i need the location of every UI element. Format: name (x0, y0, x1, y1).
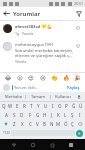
staticText: Yorum ekle... (14, 85, 65, 90)
staticText: 🔥 (63, 75, 70, 81)
button[interactable]: Paylaş (65, 84, 82, 91)
staticText: 😢 (40, 75, 46, 81)
staticText: Ç (71, 121, 74, 127)
button[interactable]: Ö (62, 120, 69, 128)
staticText: E (16, 103, 19, 109)
staticText: X (21, 121, 24, 127)
staticText: L (64, 112, 67, 118)
button[interactable]: Send (76, 130, 83, 137)
staticText: D (20, 112, 24, 118)
button[interactable]: C (26, 120, 34, 128)
staticText: Z (13, 121, 16, 127)
button[interactable]: N (48, 120, 55, 128)
button[interactable]: H (41, 111, 48, 119)
button[interactable]: S (10, 111, 18, 119)
button[interactable]: 😢 (39, 74, 47, 82)
staticText: J (51, 112, 53, 118)
button[interactable]: ?123 (2, 129, 10, 137)
staticText: M (56, 121, 61, 127)
staticText: Yorumlar (13, 10, 41, 18)
button[interactable]: 🎉 (73, 74, 81, 82)
staticText: Ö (64, 121, 68, 127)
button[interactable]: mehmetuygun1991 Sonunda! merhaba kardeşi… (0, 39, 85, 67)
button[interactable]: Filter (72, 7, 85, 20)
staticText: 👏 (51, 75, 58, 81)
button[interactable]: U (42, 102, 49, 110)
button[interactable]: ahmet382sd 💛💪 (0, 21, 85, 39)
staticText: N (50, 121, 54, 127)
button[interactable]: Back (9, 140, 19, 150)
button[interactable]: Tamam (26, 92, 50, 101)
button[interactable]: Ç (69, 120, 76, 128)
button[interactable]: Merhaba (2, 92, 25, 101)
button[interactable]: M (55, 120, 62, 128)
button[interactable]: J (48, 111, 55, 119)
staticText: I (52, 103, 54, 109)
staticText: 1g Yanıtla (15, 31, 34, 36)
button[interactable]: Like (74, 24, 82, 32)
button[interactable]: K (55, 111, 62, 119)
button[interactable]: Ğ (70, 102, 77, 110)
button[interactable]: B (41, 120, 48, 128)
button[interactable]: 😮 (16, 74, 24, 82)
staticText: W (8, 103, 13, 109)
staticText: G (36, 112, 40, 118)
staticText: C (29, 121, 32, 127)
staticText: Tamam (31, 94, 45, 99)
staticText: T (30, 103, 33, 109)
button[interactable]: 😍 (27, 74, 35, 82)
button[interactable]: P (63, 102, 70, 110)
staticText: V (36, 121, 39, 127)
button[interactable]: X (18, 120, 26, 128)
staticText: ahmet382sd 💛💪 (15, 24, 52, 30)
button[interactable]: L (62, 111, 69, 119)
button[interactable]: V (34, 120, 41, 128)
staticText: K (57, 112, 60, 118)
button[interactable]: I (49, 102, 56, 110)
button[interactable]: Recents (47, 140, 57, 150)
button[interactable]: 🔥 (62, 74, 70, 82)
staticText: P (65, 103, 68, 109)
staticText: H (43, 112, 47, 118)
button[interactable]: T (28, 102, 35, 110)
staticText: 🎉 (74, 75, 81, 81)
staticText: Yanıtla (15, 59, 27, 64)
button[interactable]: Shift (1, 120, 10, 128)
button[interactable]: Y (35, 102, 42, 110)
button[interactable]: 😂 (4, 74, 12, 82)
button[interactable]: Home (28, 140, 38, 150)
staticText: mehmetuygun1991 Sonunda! merhaba kardeşi… (15, 42, 74, 58)
button[interactable]: Backspace (76, 120, 84, 128)
button[interactable]: D (18, 111, 26, 119)
button[interactable]: E (14, 102, 21, 110)
staticText: 😮 (17, 75, 23, 81)
staticText: U (44, 103, 48, 109)
button[interactable]: Ş (69, 111, 76, 119)
button[interactable]: Back (0, 7, 13, 20)
staticText: 😍 (28, 75, 34, 81)
staticText: Y (37, 103, 40, 109)
button[interactable]: I (76, 111, 83, 119)
button[interactable]: O (56, 102, 63, 110)
staticText: Ş (71, 112, 74, 118)
button[interactable]: A (2, 111, 10, 119)
button[interactable]: Like (74, 42, 82, 50)
button[interactable]: F (26, 111, 34, 119)
staticText: F (29, 112, 32, 118)
button[interactable]: Z (10, 120, 18, 128)
button[interactable]: Keyboard (66, 140, 76, 150)
button[interactable]: Ü (77, 102, 84, 110)
staticText: Merhaba (5, 94, 22, 99)
staticText: Q (2, 103, 6, 109)
staticText: O (58, 103, 62, 109)
button[interactable]: Q (1, 102, 7, 110)
staticText: 20:51 (74, 1, 83, 6)
button[interactable]: Voice input (75, 92, 83, 101)
button[interactable]: G (34, 111, 41, 119)
button[interactable]: Kullanıcı (51, 92, 75, 101)
staticText: A (5, 112, 8, 118)
button[interactable]: R (21, 102, 28, 110)
button[interactable]: 👏 (50, 74, 58, 82)
button[interactable]: W (7, 102, 14, 110)
